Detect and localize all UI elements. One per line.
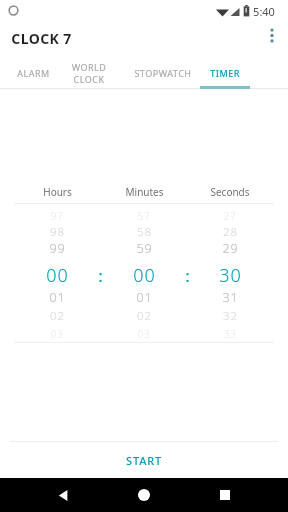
- button[interactable]: 00: [22, 260, 92, 291]
- button[interactable]: WORLD CLOCK: [57, 60, 121, 86]
- staticText: 30: [219, 263, 242, 288]
- staticText: 5:40: [253, 4, 275, 18]
- button[interactable]: Back: [45, 478, 81, 512]
- staticText: 01: [136, 289, 153, 306]
- staticText: 31: [222, 289, 239, 306]
- staticText: 33: [223, 327, 237, 341]
- button[interactable]: 59: [109, 238, 179, 259]
- button[interactable]: ALARM: [11, 60, 56, 86]
- staticText: WORLD CLOCK: [57, 61, 121, 85]
- button[interactable]: More options: [256, 19, 288, 51]
- staticText: 58: [137, 224, 152, 240]
- staticText: Hours: [43, 185, 72, 199]
- button[interactable]: 30: [195, 260, 265, 291]
- staticText: 59: [136, 240, 153, 257]
- button[interactable]: 02: [22, 306, 92, 326]
- staticText: :: [185, 264, 190, 287]
- staticText: TIMER: [210, 67, 240, 79]
- staticText: STOPWATCH: [134, 67, 192, 79]
- staticText: 29: [222, 240, 239, 257]
- button[interactable]: START: [0, 442, 288, 478]
- button[interactable]: 02: [109, 306, 179, 326]
- button[interactable]: 98: [22, 222, 92, 242]
- staticText: 03: [50, 327, 64, 341]
- staticText: START: [126, 453, 162, 468]
- staticText: Seconds: [210, 185, 250, 199]
- button[interactable]: 00: [109, 260, 179, 291]
- staticText: 98: [50, 224, 65, 240]
- staticText: 99: [49, 240, 66, 257]
- staticText: 03: [137, 327, 151, 341]
- staticText: 32: [223, 308, 238, 324]
- staticText: 00: [46, 263, 69, 288]
- button[interactable]: 29: [195, 238, 265, 259]
- button[interactable]: 31: [195, 287, 265, 308]
- button[interactable]: STOPWATCH: [134, 60, 192, 86]
- button[interactable]: 58: [109, 222, 179, 242]
- staticText: 02: [50, 308, 65, 324]
- staticText: 57: [137, 209, 151, 223]
- button[interactable]: 01: [22, 287, 92, 308]
- button[interactable]: 99: [22, 238, 92, 259]
- staticText: 02: [137, 308, 152, 324]
- staticText: CLOCK 7: [11, 29, 72, 48]
- staticText: 27: [223, 209, 237, 223]
- staticText: 00: [133, 263, 156, 288]
- staticText: :: [98, 264, 103, 287]
- staticText: Minutes: [125, 185, 164, 199]
- staticText: ALARM: [17, 67, 50, 79]
- staticText: 97: [50, 209, 64, 223]
- button[interactable]: 01: [109, 287, 179, 308]
- button[interactable]: Home: [126, 478, 162, 512]
- button[interactable]: Recent apps: [207, 478, 243, 512]
- button[interactable]: TIMER: [200, 60, 250, 86]
- staticText: 28: [223, 224, 238, 240]
- button[interactable]: 28: [195, 222, 265, 242]
- staticText: 01: [49, 289, 66, 306]
- button[interactable]: 32: [195, 306, 265, 326]
